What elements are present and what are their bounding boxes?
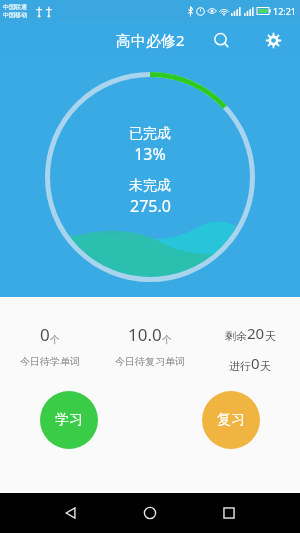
button[interactable]: 0 — [0, 323, 100, 368]
button[interactable]: 10.0 — [100, 323, 200, 368]
staticText: 20 — [247, 323, 265, 343]
staticText: 天 — [260, 359, 271, 373]
button[interactable]: Home — [133, 496, 167, 530]
staticText: 13% — [134, 143, 166, 165]
staticText: 12:21 — [273, 5, 297, 17]
staticText: 剩余 — [225, 329, 247, 343]
staticText: 0 — [40, 323, 50, 346]
button[interactable]: 剩余 — [200, 323, 300, 373]
staticText: 中国移动 — [3, 11, 27, 19]
staticText: 学习 — [55, 411, 83, 429]
staticText: 未完成 — [129, 177, 171, 195]
button[interactable]: 学习 — [40, 391, 98, 449]
staticText: 今日待学单词 — [20, 355, 80, 368]
button[interactable]: Search — [204, 23, 238, 57]
button[interactable]: 复习 — [202, 391, 260, 449]
staticText: 0 — [251, 353, 260, 373]
staticText: 275.0 — [130, 195, 171, 217]
staticText: 个 — [162, 333, 172, 346]
button[interactable]: Back — [54, 496, 88, 530]
staticText: 中国联通 — [3, 3, 27, 11]
staticText: 天 — [265, 329, 276, 343]
button[interactable]: Settings — [256, 23, 290, 57]
staticText: 个 — [50, 333, 60, 346]
staticText: 高中必修2 — [116, 30, 185, 50]
staticText: 复习 — [217, 411, 245, 429]
staticText: 10.0 — [128, 323, 162, 346]
staticText: 已完成 — [129, 125, 171, 143]
button[interactable]: Recent apps — [212, 496, 246, 530]
staticText: 进行 — [229, 359, 251, 373]
staticText: 今日待复习单词 — [115, 355, 185, 368]
